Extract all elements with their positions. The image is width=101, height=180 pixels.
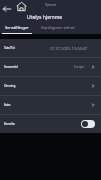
staticText: 27.07.2025 13:04:47 — [50, 46, 88, 51]
button[interactable]: Sommertid — [0, 58, 101, 76]
staticText: Sommertid — [4, 65, 18, 69]
staticText: Europa — [74, 65, 85, 69]
staticText: Dato/Tid — [4, 46, 15, 50]
button[interactable]: Innstillinger — [2, 25, 32, 34]
button[interactable]: Konfigurer enhet — [38, 25, 78, 34]
staticText: Astro — [4, 103, 11, 107]
button[interactable]: Back — [1, 3, 13, 15]
button[interactable]: Home — [16, 1, 27, 12]
button[interactable]: Dimming — [0, 77, 101, 95]
staticText: Innstillinger — [5, 25, 29, 31]
staticText: Utelys hjemme — [27, 14, 63, 21]
button[interactable]: Barnelås — [0, 115, 101, 133]
button[interactable]: Astro — [0, 96, 101, 114]
staticText: Dimming — [4, 84, 16, 88]
staticText: Konfigurer enhet — [41, 25, 75, 31]
staticText: Hjemme — [45, 3, 57, 7]
staticText: Barnelås — [4, 122, 15, 126]
button[interactable]: Barnelås toggle — [81, 120, 95, 128]
button[interactable]: Dato/Tid — [0, 39, 101, 57]
